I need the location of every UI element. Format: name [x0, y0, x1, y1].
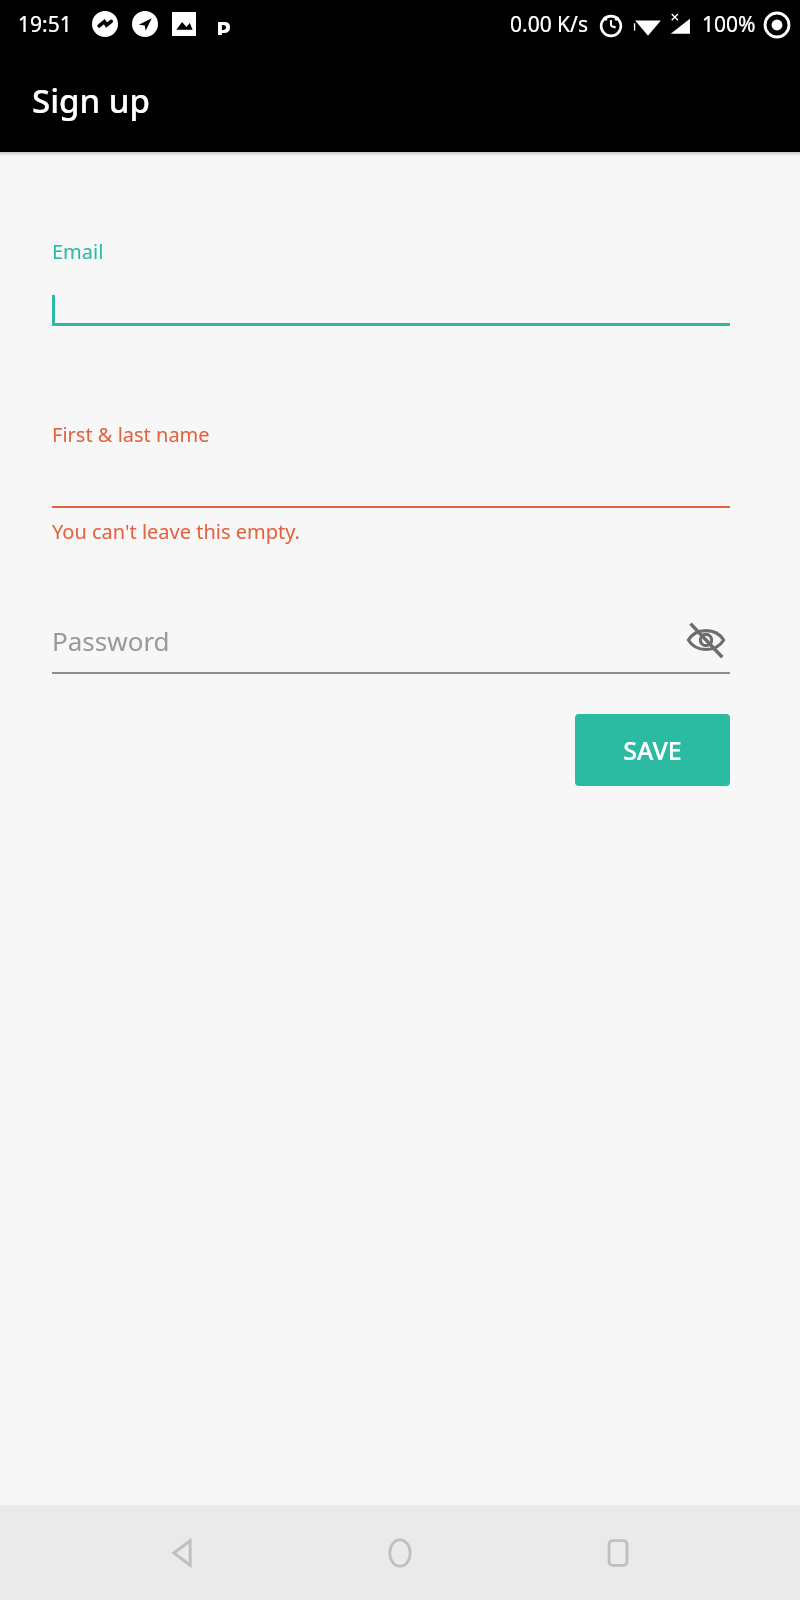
staticText: Sign up: [32, 78, 150, 123]
staticText: SAVE: [623, 733, 682, 767]
button[interactable]: Home: [364, 1517, 436, 1589]
staticText: 19:51: [18, 10, 72, 39]
staticText: 100%: [702, 10, 756, 39]
button[interactable]: Recent apps: [582, 1517, 654, 1589]
staticText: P: [216, 13, 231, 35]
button[interactable]: First & last name: [52, 421, 730, 508]
button[interactable]: Back: [146, 1517, 218, 1589]
button[interactable]: SAVE: [575, 714, 730, 786]
button[interactable]: Show password: [682, 617, 730, 663]
staticText: 0.00 K/s: [510, 10, 588, 39]
staticText: Password: [52, 623, 170, 658]
staticText: First & last name: [52, 421, 210, 448]
staticText: Email: [52, 238, 104, 265]
staticText: You can't leave this empty.: [52, 518, 300, 545]
button[interactable]: Email: [52, 238, 730, 326]
